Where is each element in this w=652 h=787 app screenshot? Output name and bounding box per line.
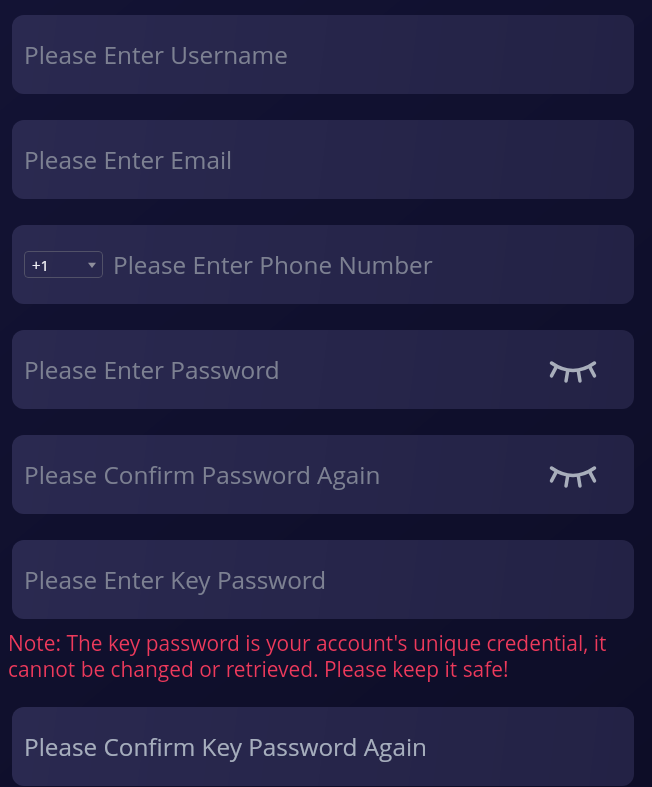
- button[interactable]: Please Enter Username: [12, 15, 634, 94]
- staticText: Please Enter Email: [24, 143, 233, 176]
- staticText: Please Confirm Password Again: [24, 458, 381, 491]
- staticText: Note: The key password is your account's…: [8, 629, 607, 683]
- staticText: Please Enter Key Password: [24, 563, 327, 596]
- button[interactable]: Please Enter Key Password: [12, 540, 634, 619]
- staticText: Please Confirm Key Password Again: [24, 730, 427, 763]
- button[interactable]: Please Confirm Password Again: [12, 435, 634, 514]
- staticText: +1: [32, 255, 50, 275]
- staticText: Please Enter Username: [24, 38, 288, 71]
- button[interactable]: +1: [12, 225, 634, 304]
- button[interactable]: Please Confirm Key Password Again: [12, 707, 634, 786]
- button[interactable]: Please Enter Email: [12, 120, 634, 199]
- staticText: Please Enter Phone Number: [113, 248, 433, 281]
- button[interactable]: +1: [24, 251, 103, 278]
- button[interactable]: Please Enter Password: [12, 330, 634, 409]
- staticText: Please Enter Password: [24, 353, 280, 386]
